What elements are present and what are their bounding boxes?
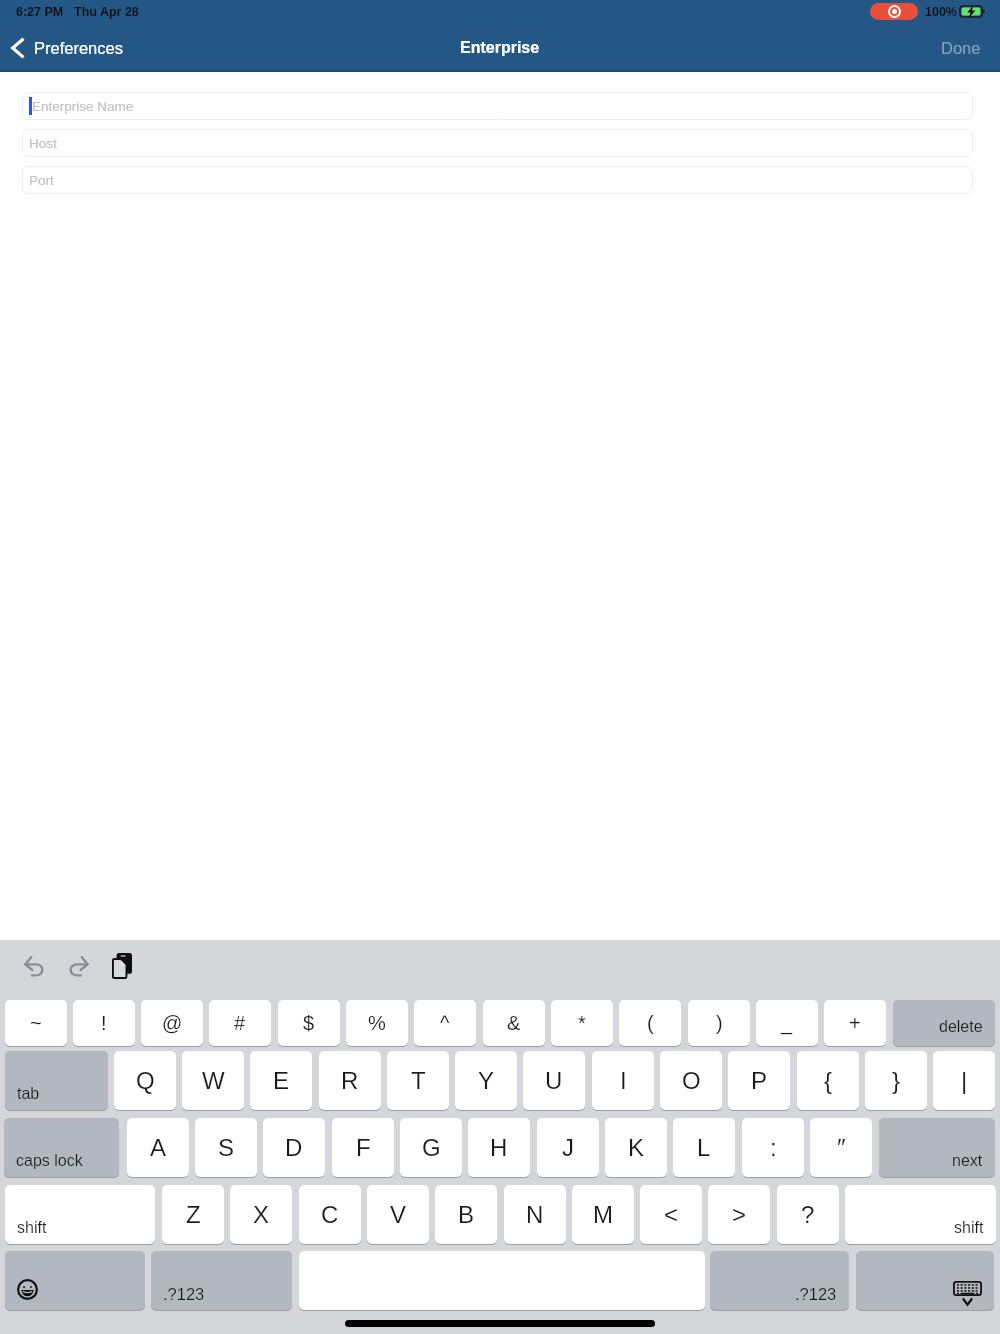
button[interactable]: Preferences <box>11 38 123 58</box>
staticText: | <box>961 1067 968 1094</box>
staticText: Port <box>29 173 54 188</box>
button[interactable]: | <box>933 1051 995 1110</box>
button[interactable]: R <box>319 1051 381 1110</box>
button[interactable]: T <box>387 1051 449 1110</box>
button[interactable]: Q <box>114 1051 176 1110</box>
button[interactable]: < <box>640 1185 702 1244</box>
other: Screen recording <box>870 3 918 20</box>
button[interactable]: Port <box>22 166 973 194</box>
staticText: Preferences <box>34 39 123 57</box>
button[interactable]: { <box>797 1051 859 1110</box>
staticText: N <box>526 1201 544 1228</box>
staticText: ? <box>801 1201 815 1228</box>
button[interactable]: .?123 <box>151 1251 292 1310</box>
button[interactable]: _ <box>756 1000 818 1046</box>
button[interactable]: S <box>195 1118 257 1177</box>
button[interactable]: U <box>523 1051 585 1110</box>
staticText: % <box>368 1012 386 1034</box>
button[interactable]: ″ <box>810 1118 872 1177</box>
staticText: caps lock <box>16 1152 83 1170</box>
button[interactable]: W <box>182 1051 244 1110</box>
button[interactable]: tab <box>5 1051 108 1110</box>
staticText: ( <box>647 1012 654 1034</box>
staticText: # <box>234 1012 246 1034</box>
button[interactable]: Host <box>22 129 973 157</box>
button[interactable]: caps lock <box>4 1118 119 1177</box>
staticText: ″ <box>837 1134 846 1161</box>
staticText: tab <box>17 1085 40 1103</box>
button[interactable]: E <box>250 1051 312 1110</box>
button[interactable]: next <box>879 1118 995 1177</box>
button[interactable]: Paste <box>108 951 136 981</box>
button[interactable]: N <box>504 1185 566 1244</box>
staticText: B <box>458 1201 475 1228</box>
button[interactable]: .?123 <box>710 1251 849 1310</box>
staticText: & <box>507 1012 521 1034</box>
button[interactable]: P <box>728 1051 790 1110</box>
button[interactable]: shift <box>5 1185 155 1244</box>
staticText: D <box>285 1134 303 1161</box>
staticText: P <box>751 1067 768 1094</box>
staticText: 100% <box>925 5 957 19</box>
button[interactable]: I <box>592 1051 654 1110</box>
button[interactable]: $ <box>278 1000 340 1046</box>
button[interactable]: Y <box>455 1051 517 1110</box>
button[interactable]: & <box>483 1000 545 1046</box>
button[interactable]: ! <box>73 1000 135 1046</box>
button[interactable]: B <box>435 1185 497 1244</box>
button[interactable]: L <box>673 1118 735 1177</box>
button[interactable]: A <box>127 1118 189 1177</box>
button[interactable]: Enterprise Name <box>22 92 973 120</box>
button[interactable]: @ <box>141 1000 203 1046</box>
staticText: shift <box>954 1219 984 1237</box>
button[interactable]: C <box>299 1185 361 1244</box>
staticText: Enterprise Name <box>32 99 134 114</box>
staticText: } <box>892 1067 901 1094</box>
staticText: shift <box>17 1219 47 1237</box>
button[interactable]: ? <box>777 1185 839 1244</box>
staticText: @ <box>162 1012 183 1034</box>
button[interactable]: M <box>572 1185 634 1244</box>
button[interactable]: ^ <box>414 1000 476 1046</box>
button[interactable]: X <box>230 1185 292 1244</box>
staticText: Z <box>186 1201 201 1228</box>
staticText: + <box>849 1012 861 1034</box>
staticText: Host <box>29 136 57 151</box>
staticText: T <box>411 1067 426 1094</box>
button[interactable]: } <box>865 1051 927 1110</box>
button[interactable]: % <box>346 1000 408 1046</box>
staticText: Y <box>478 1067 495 1094</box>
button[interactable]: ~ <box>5 1000 67 1046</box>
button[interactable]: Z <box>162 1185 224 1244</box>
button[interactable]: H <box>468 1118 530 1177</box>
button[interactable]: J <box>537 1118 599 1177</box>
staticText: 6:27 PM <box>16 5 64 19</box>
staticText: ! <box>101 1012 107 1034</box>
button[interactable]: F <box>332 1118 394 1177</box>
staticText: I <box>620 1067 627 1094</box>
button[interactable]: Undo <box>21 952 47 980</box>
staticText: next <box>952 1152 983 1170</box>
button[interactable]: shift <box>845 1185 996 1244</box>
button[interactable]: * <box>551 1000 613 1046</box>
button[interactable]: + <box>824 1000 886 1046</box>
button[interactable]: Emoji <box>5 1251 145 1310</box>
button[interactable]: : <box>742 1118 804 1177</box>
button[interactable]: # <box>209 1000 271 1046</box>
button[interactable]: delete <box>893 1000 995 1046</box>
button[interactable]: ) <box>688 1000 750 1046</box>
staticText: A <box>150 1134 167 1161</box>
button[interactable]: ( <box>619 1000 681 1046</box>
button[interactable]: Done <box>941 39 981 57</box>
button[interactable]: V <box>367 1185 429 1244</box>
staticText: K <box>628 1134 645 1161</box>
button[interactable]: > <box>708 1185 770 1244</box>
button[interactable]: Redo <box>65 952 91 980</box>
button[interactable]: D <box>263 1118 325 1177</box>
button[interactable]: O <box>660 1051 722 1110</box>
staticText: H <box>490 1134 508 1161</box>
button[interactable]: Hide keyboard <box>856 1251 994 1310</box>
button[interactable]: G <box>400 1118 462 1177</box>
button[interactable]: K <box>605 1118 667 1177</box>
